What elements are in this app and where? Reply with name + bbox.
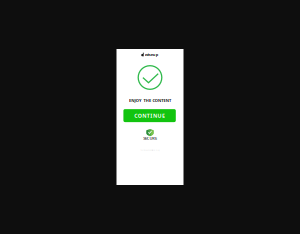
- staticText: wiseup: [145, 52, 159, 57]
- staticText: ENJOY THE CONTENT: [129, 98, 171, 103]
- staticText: SECURE: [143, 136, 157, 141]
- button[interactable]: CONTINUE: [123, 109, 176, 122]
- staticText: CONTINUE: [134, 112, 165, 119]
- staticText: Terms & Conditions · FAQ: [140, 149, 159, 151]
- button[interactable]: Terms & Conditions · FAQ: [128, 148, 172, 152]
